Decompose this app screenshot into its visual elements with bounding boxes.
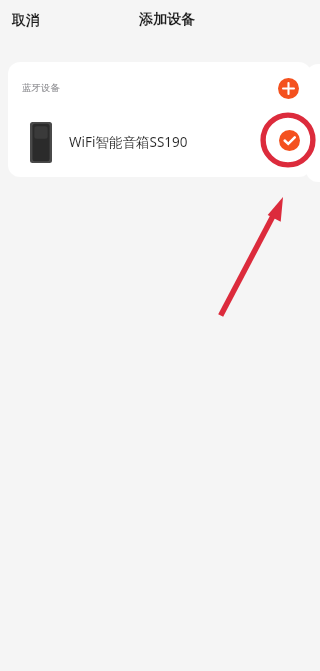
button[interactable]: 已选择 <box>279 130 300 151</box>
staticText: WiFi智能音箱SS190 <box>69 133 188 151</box>
button[interactable]: 添加 <box>278 78 299 99</box>
button[interactable]: WiFi智能音箱SS190 <box>8 112 311 172</box>
staticText: 蓝牙设备 <box>22 82 60 94</box>
staticText: 添加设备 <box>139 11 195 29</box>
button[interactable]: 取消 <box>6 6 45 35</box>
staticText: 取消 <box>12 12 39 29</box>
